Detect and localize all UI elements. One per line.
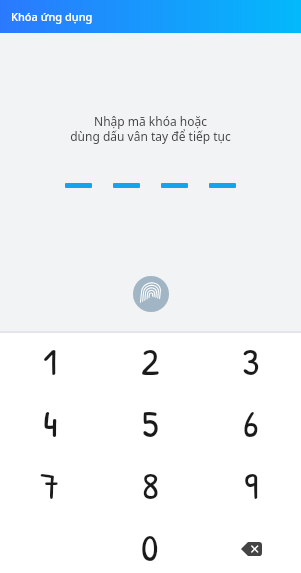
staticText: 4 bbox=[43, 396, 58, 449]
staticText: Nhập mã khóa hoặc dùng dấu vân tay để ti… bbox=[70, 113, 231, 144]
staticText: 2 bbox=[141, 334, 160, 387]
staticText: 8 bbox=[142, 458, 159, 511]
staticText: 7 bbox=[40, 458, 60, 511]
button[interactable]: 4 bbox=[0, 394, 100, 456]
staticText: 5 bbox=[142, 396, 159, 449]
staticText: 0 bbox=[141, 520, 159, 573]
button[interactable]: 2 bbox=[100, 332, 200, 394]
button[interactable]: Delete bbox=[201, 518, 301, 573]
button[interactable]: 3 bbox=[201, 332, 301, 394]
staticText: 3 bbox=[242, 334, 260, 387]
button[interactable]: 7 bbox=[0, 456, 100, 518]
staticText: 1 bbox=[43, 334, 58, 387]
button[interactable]: 8 bbox=[100, 456, 200, 518]
button[interactable]: 9 bbox=[201, 456, 301, 518]
button[interactable]: 0 bbox=[100, 518, 200, 573]
button[interactable]: Unlock with fingerprint bbox=[133, 276, 169, 312]
staticText: Khóa ứng dụng bbox=[11, 9, 93, 24]
button[interactable]: 5 bbox=[100, 394, 200, 456]
staticText: 9 bbox=[244, 458, 259, 511]
button[interactable]: 6 bbox=[201, 394, 301, 456]
button[interactable]: 1 bbox=[0, 332, 100, 394]
staticText: 6 bbox=[243, 396, 259, 449]
